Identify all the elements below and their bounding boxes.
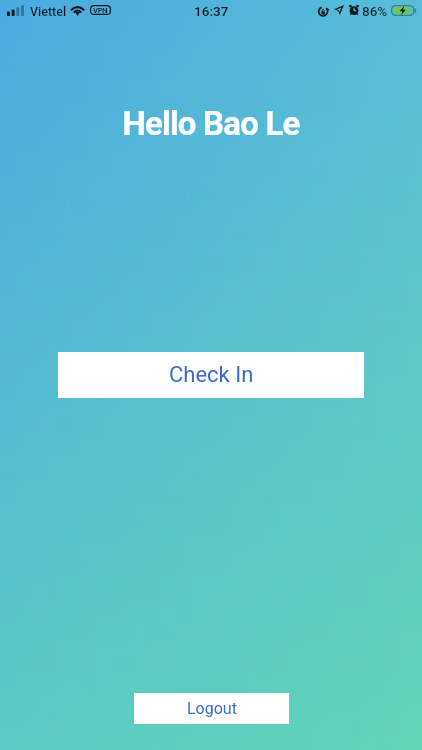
other: Location (334, 5, 344, 15)
staticText: Check In (169, 362, 254, 388)
staticText: Logout (187, 699, 237, 718)
staticText: Hello Bao Le (0, 104, 422, 143)
staticText: Viettel (30, 4, 67, 19)
other: Rotation lock (318, 6, 329, 17)
staticText: 16:37 (194, 3, 229, 19)
button[interactable]: Logout (134, 693, 289, 724)
staticText: VPN (93, 6, 108, 15)
button[interactable]: Check In (58, 352, 364, 398)
staticText: 86% (362, 3, 388, 19)
other: Alarm (349, 5, 359, 15)
other: Battery 86 percent charging (391, 5, 417, 16)
